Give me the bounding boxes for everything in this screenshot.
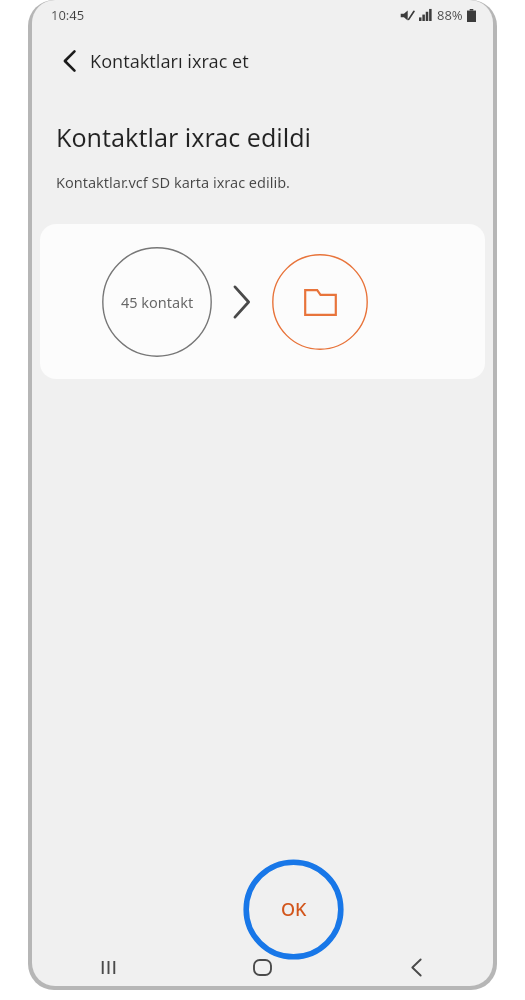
staticText: Kontaktları ixrac et: [90, 49, 249, 74]
button[interactable]: OK: [243, 859, 344, 960]
button[interactable]: 45 kontakt: [40, 224, 485, 379]
staticText: Kontaktlar ixrac edildi: [56, 120, 312, 154]
staticText: Kontaktlar.vcf SD karta ixrac edilib.: [56, 172, 290, 192]
button[interactable]: Back: [339, 947, 493, 986]
button[interactable]: Back: [46, 37, 94, 85]
button[interactable]: Recent apps: [32, 947, 185, 986]
staticText: OK: [281, 897, 307, 922]
staticText: 88%: [437, 6, 463, 24]
button[interactable]: Home: [185, 947, 339, 986]
staticText: 45 kontakt: [121, 292, 194, 312]
staticText: 10:45: [51, 6, 85, 24]
